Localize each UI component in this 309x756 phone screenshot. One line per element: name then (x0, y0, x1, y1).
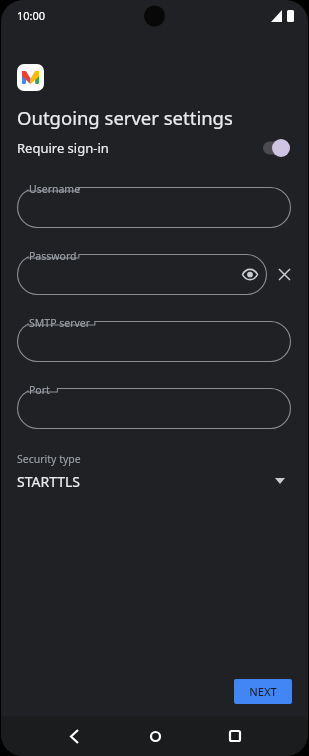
button[interactable]: Security type STARTTLS (1, 448, 308, 500)
button[interactable]: Require sign-in toggle (263, 139, 290, 157)
button[interactable]: Home (138, 719, 172, 753)
button[interactable]: Password (17, 247, 267, 288)
button[interactable]: Show password (239, 263, 261, 285)
other: Gmail (17, 64, 44, 91)
staticText: Password (29, 249, 77, 263)
button[interactable]: Clear password (273, 263, 295, 285)
button[interactable]: Back (57, 719, 91, 753)
staticText: Require sign-in (17, 139, 109, 157)
staticText: Username (29, 182, 81, 196)
staticText: STARTTLS (17, 472, 81, 491)
staticText: SMTP server (29, 316, 91, 330)
button[interactable]: NEXT (234, 679, 292, 704)
staticText: 10:00 (17, 8, 46, 23)
button[interactable]: Recent apps (218, 719, 252, 753)
button[interactable]: Require sign-in (1, 130, 308, 166)
button[interactable]: Port (17, 381, 291, 429)
staticText: NEXT (249, 684, 277, 699)
button[interactable]: SMTP server (17, 314, 291, 362)
button[interactable]: Username (17, 180, 291, 228)
staticText: Outgoing server settings (17, 105, 233, 130)
staticText: Port (29, 383, 50, 397)
staticText: Security type (17, 452, 81, 466)
